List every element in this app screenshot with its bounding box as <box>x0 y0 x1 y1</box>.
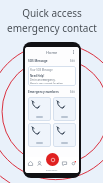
button[interactable]: More options <box>70 49 77 56</box>
staticText: emergency contact <box>7 21 97 35</box>
staticText: Emergency <box>46 169 58 172</box>
button[interactable]: Your SOS Message <box>28 66 76 86</box>
button[interactable] <box>28 97 51 121</box>
staticText: Quick access <box>22 6 82 20</box>
staticText: Emergency numbers <box>28 90 59 94</box>
staticText: Your SOS Message <box>30 68 53 72</box>
staticText: Need Help! <box>30 74 45 78</box>
button[interactable] <box>53 123 76 147</box>
button[interactable]: Edit <box>69 58 76 64</box>
button[interactable]: Emergency SOS <box>46 153 59 166</box>
button[interactable]: Contacts <box>35 159 44 168</box>
staticText: I'm in an emergency. <box>30 78 56 82</box>
staticText: Edit <box>70 90 75 94</box>
staticText: Home <box>46 50 58 55</box>
staticText: Edit <box>70 59 75 63</box>
staticText: Here is my current location. <box>30 82 64 84</box>
button[interactable]: Edit <box>69 89 76 95</box>
button[interactable] <box>53 97 76 121</box>
button[interactable]: Home <box>44 49 60 56</box>
button[interactable]: Settings <box>69 159 78 168</box>
button[interactable]: Messages <box>60 159 69 168</box>
staticText: SOS Message <box>28 59 48 63</box>
button[interactable]: Home <box>26 159 35 168</box>
button[interactable] <box>28 123 51 147</box>
